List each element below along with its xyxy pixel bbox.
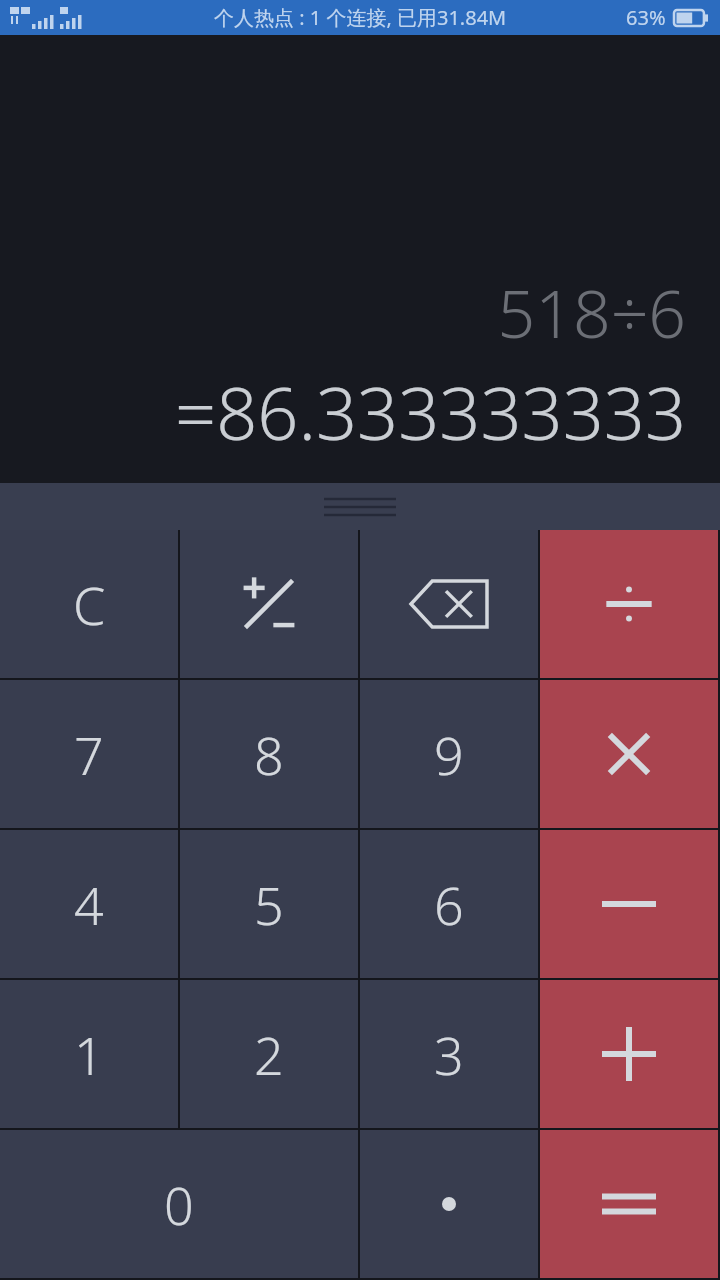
button[interactable]: 7: [0, 680, 178, 828]
button[interactable]: C: [0, 530, 178, 678]
staticText: 6: [434, 869, 464, 940]
button[interactable]: Plus minus: [180, 530, 358, 678]
staticText: =86.333333333: [175, 363, 686, 461]
button[interactable]: Equals: [540, 1130, 718, 1278]
button[interactable]: 0: [0, 1130, 358, 1278]
staticText: 518÷6: [497, 267, 686, 357]
staticText: 0: [164, 1169, 194, 1240]
staticText: 2: [254, 1019, 284, 1090]
button[interactable]: 6: [360, 830, 538, 978]
button[interactable]: 2: [180, 980, 358, 1128]
button[interactable]: 3: [360, 980, 538, 1128]
staticText: 8: [254, 719, 284, 790]
button[interactable]: Backspace: [360, 530, 538, 678]
button[interactable]: Divide: [540, 530, 718, 678]
button[interactable]: 8: [180, 680, 358, 828]
button[interactable]: Plus: [540, 980, 718, 1128]
button[interactable]: 1: [0, 980, 178, 1128]
staticText: 1: [74, 1019, 104, 1090]
button[interactable]: 5: [180, 830, 358, 978]
staticText: 63%: [626, 4, 666, 31]
staticText: 个人热点 : 1 个连接, 已用31.84M: [214, 4, 507, 31]
staticText: 5: [254, 869, 284, 940]
button[interactable]: Minus: [540, 830, 718, 978]
staticText: C: [73, 569, 106, 640]
staticText: 9: [434, 719, 464, 790]
button[interactable]: 4: [0, 830, 178, 978]
staticText: 7: [74, 719, 104, 790]
button[interactable]: 9: [360, 680, 538, 828]
staticText: 4: [74, 869, 104, 940]
button[interactable]: Decimal point: [360, 1130, 538, 1278]
staticText: 3: [434, 1019, 464, 1090]
button[interactable]: Multiply: [540, 680, 718, 828]
